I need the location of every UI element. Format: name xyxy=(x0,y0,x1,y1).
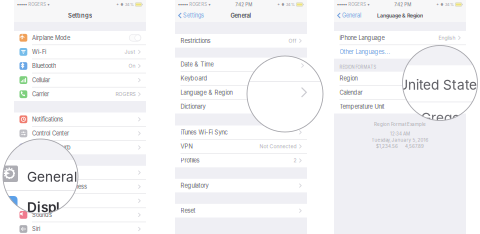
staticText: 34% xyxy=(445,2,454,7)
button[interactable]: Carrier xyxy=(14,87,146,101)
staticText: ▾ xyxy=(367,2,369,7)
staticText: Cellular xyxy=(32,77,50,84)
staticText: 34% xyxy=(125,2,134,7)
button[interactable]: Wi-Fi xyxy=(14,45,146,59)
staticText: ROGERS xyxy=(116,91,136,97)
staticText: Notifications xyxy=(32,116,63,123)
button[interactable]: Keyboard xyxy=(175,72,307,85)
button[interactable]: Dictionary xyxy=(175,100,307,113)
button[interactable]: Cellular xyxy=(14,73,146,87)
staticText: General xyxy=(230,12,251,19)
staticText: Grego xyxy=(421,109,460,126)
staticText: Sounds xyxy=(32,211,52,218)
button[interactable]: Notifications xyxy=(14,112,146,126)
staticText: Off xyxy=(288,38,296,44)
staticText: 7:42 PM xyxy=(235,2,252,7)
button[interactable]: Settings xyxy=(175,10,204,21)
button[interactable]: VPN xyxy=(175,140,307,153)
button[interactable]: Control Center xyxy=(14,127,146,140)
staticText: ▾ xyxy=(47,2,49,7)
button[interactable]: Restrictions xyxy=(175,34,307,48)
button[interactable]: Sounds xyxy=(14,208,146,222)
staticText: Dictionary xyxy=(180,103,205,110)
staticText: Temperature Unit xyxy=(339,103,384,110)
staticText: Profiles xyxy=(180,157,199,164)
staticText: Wallpaper xyxy=(32,197,58,204)
button[interactable]: General xyxy=(14,166,146,179)
button[interactable]: Do Not Disturb xyxy=(14,141,146,154)
staticText: Region xyxy=(339,75,357,82)
button[interactable]: Siri xyxy=(14,222,146,234)
staticText: General xyxy=(27,168,77,185)
button[interactable]: iPhone Language xyxy=(334,31,466,45)
staticText: ✦ xyxy=(277,2,280,7)
staticText: ROGERS xyxy=(348,2,366,7)
button[interactable]: Airplane Mode xyxy=(14,31,146,45)
staticText: 12:34 AM xyxy=(390,131,410,136)
button[interactable]: Other Languages... xyxy=(334,45,466,59)
staticText: Keyboard xyxy=(180,75,207,82)
staticText: ✦ xyxy=(436,2,439,7)
staticText: Wi-Fi xyxy=(32,48,46,55)
button[interactable]: Calendar xyxy=(334,86,466,99)
staticText: ••••• xyxy=(337,2,347,7)
staticText: United States xyxy=(428,75,461,81)
button[interactable]: Regulatory xyxy=(175,179,307,192)
staticText: United States xyxy=(398,76,480,93)
staticText: 34% xyxy=(286,2,295,7)
staticText: General xyxy=(342,12,361,19)
staticText: Siri xyxy=(32,225,40,232)
staticText: Restrictions xyxy=(180,37,210,44)
button[interactable]: Profiles xyxy=(175,154,307,167)
staticText: Carrier xyxy=(32,91,49,98)
staticText: Display & Brightness xyxy=(32,183,87,190)
staticText: Settings xyxy=(183,12,204,19)
staticText: 7:42 PM xyxy=(394,2,411,7)
staticText: English xyxy=(439,35,456,41)
staticText: ▾ xyxy=(208,2,210,7)
staticText: On xyxy=(129,63,136,69)
staticText: Other Languages... xyxy=(339,48,390,55)
staticText: ⬆ xyxy=(281,2,285,7)
staticText: ••••• xyxy=(178,2,188,7)
button[interactable]: Reset xyxy=(175,204,307,217)
staticText: Reset xyxy=(180,207,195,214)
button[interactable]: iTunes Wi-Fi Sync xyxy=(175,125,307,139)
staticText: iTunes Wi-Fi Sync xyxy=(180,129,227,136)
staticText: Tuesday, January 5, 2016 xyxy=(371,137,428,143)
staticText: 2 xyxy=(294,157,297,163)
staticText: Regulatory xyxy=(180,182,208,189)
staticText: Language & Region xyxy=(180,89,232,96)
staticText: ••••• xyxy=(17,2,27,7)
staticText: REGION FORMATS xyxy=(339,65,376,70)
staticText: Airplane Mode xyxy=(32,34,70,41)
staticText: Region Format Example xyxy=(374,121,426,127)
staticText: ROGERS xyxy=(189,2,207,7)
staticText: iPhone Language xyxy=(339,34,384,41)
staticText: General xyxy=(32,169,51,176)
button[interactable]: Date & Time xyxy=(175,58,307,71)
button[interactable]: Region xyxy=(334,72,466,85)
staticText: $1,234.56 4,567.89 xyxy=(376,144,424,149)
staticText: Displ xyxy=(27,199,60,215)
staticText: Do Not Disturb xyxy=(32,144,71,151)
staticText: Calendar xyxy=(339,89,362,96)
staticText: VPN xyxy=(180,143,192,150)
staticText: ROGERS xyxy=(28,2,46,7)
button[interactable]: Wallpaper xyxy=(14,194,146,208)
staticText: Date & Time xyxy=(180,61,213,68)
button[interactable]: General xyxy=(334,10,361,21)
staticText: Language & Region xyxy=(377,12,423,19)
button[interactable]: Bluetooth xyxy=(14,59,146,73)
staticText: ✦ xyxy=(116,2,119,7)
button[interactable]: Temperature Unit xyxy=(334,100,466,113)
staticText: Bluetooth xyxy=(32,62,56,69)
staticText: Just xyxy=(125,49,136,55)
staticText: Not Connected xyxy=(259,143,296,149)
staticText: Settings xyxy=(68,12,92,19)
button[interactable]: Display & Brightness xyxy=(14,180,146,193)
staticText: Control Center xyxy=(32,130,69,137)
button[interactable]: Language & Region xyxy=(175,86,307,99)
